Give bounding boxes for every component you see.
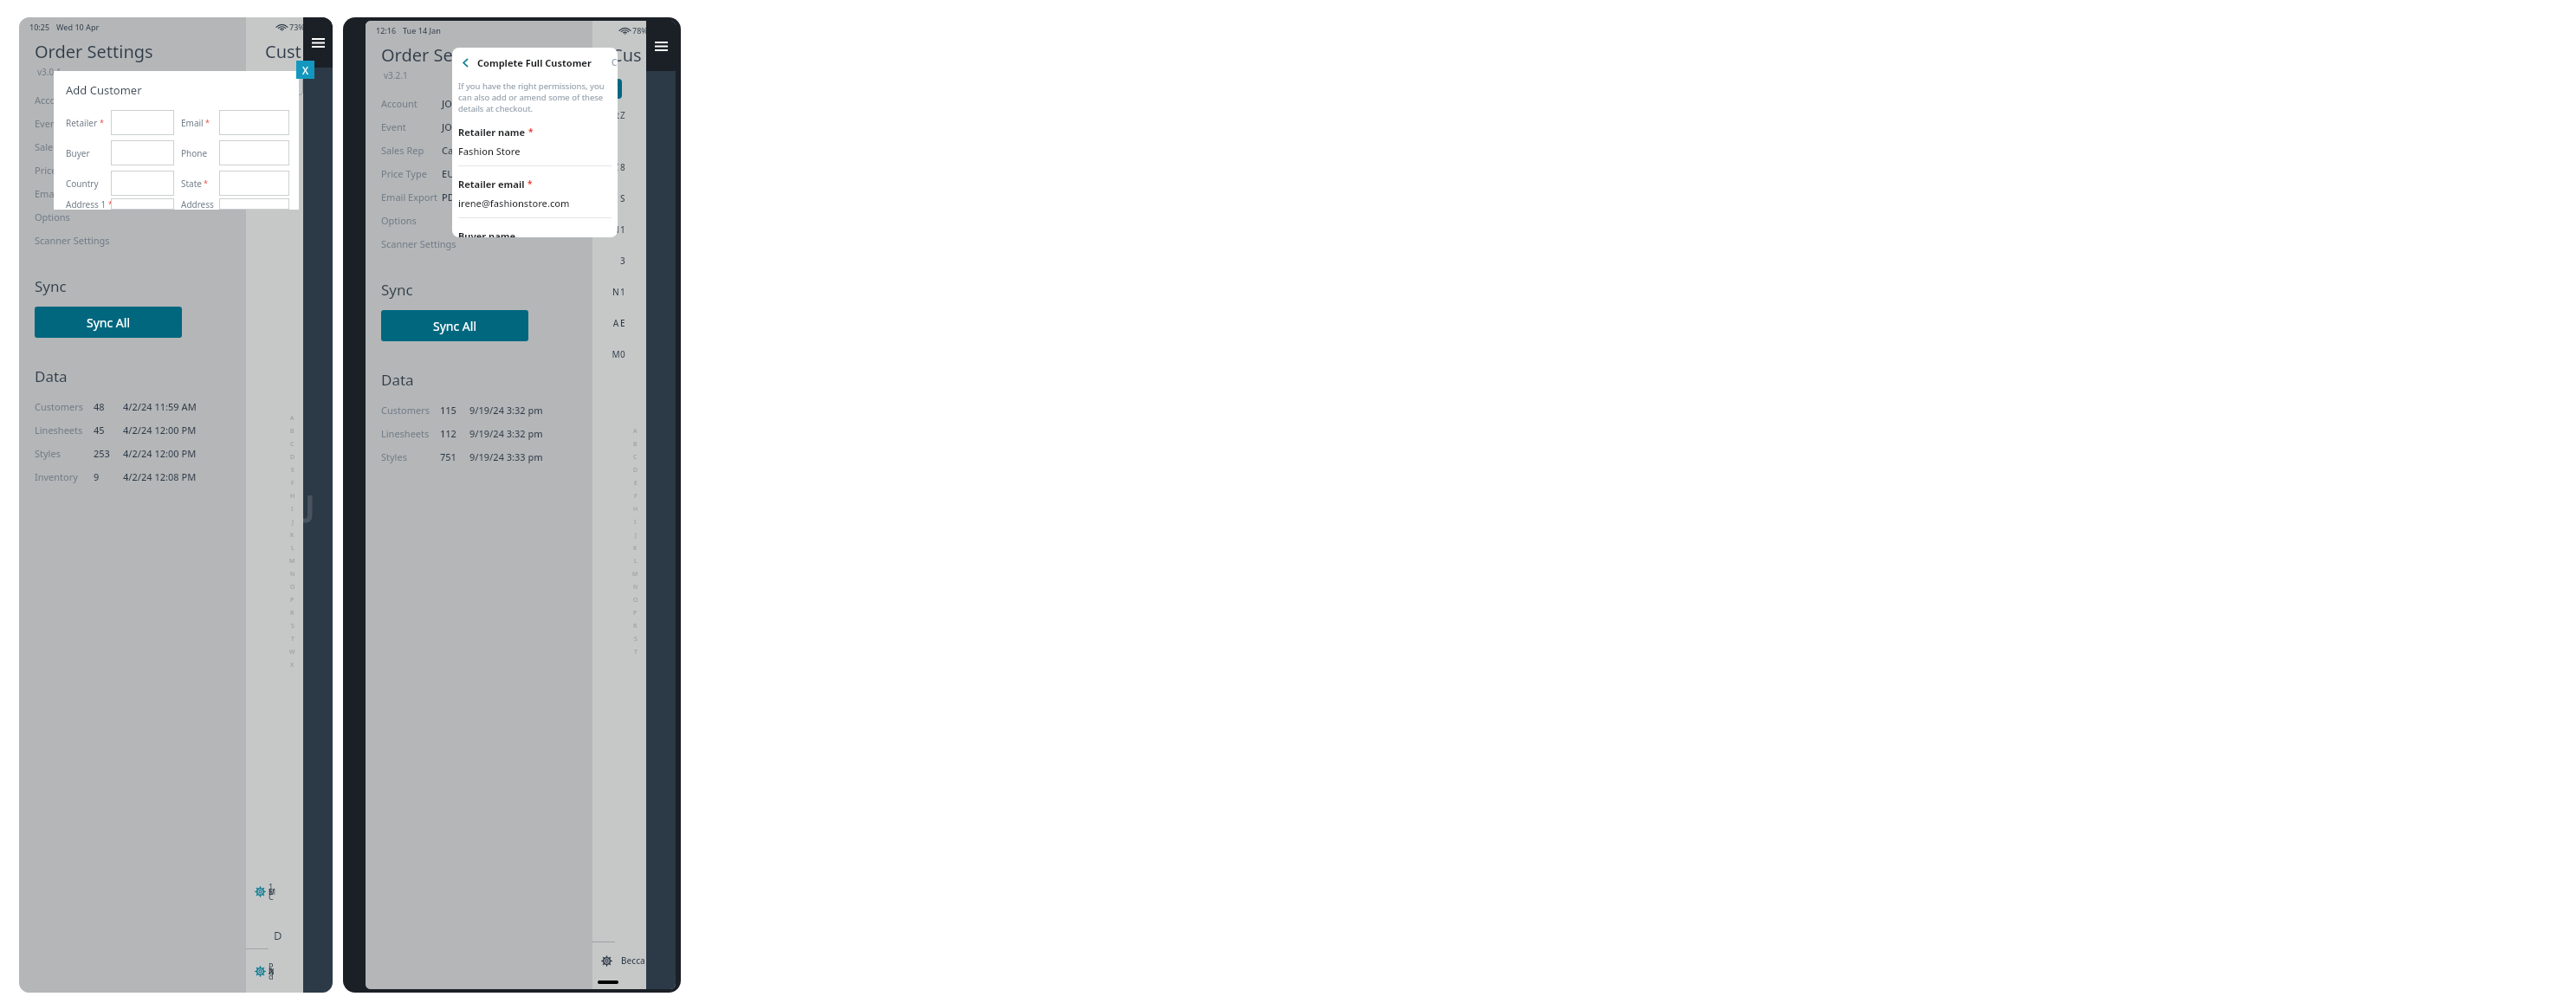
button[interactable]: Close [296, 61, 314, 79]
button[interactable] [111, 140, 174, 165]
staticText: Email [181, 117, 204, 129]
staticText: * [204, 178, 208, 188]
button[interactable]: Buyer name [458, 230, 612, 237]
staticText: H [633, 505, 638, 518]
staticText: J [635, 531, 637, 544]
staticText: NY [612, 286, 620, 298]
button[interactable]: Account [381, 92, 584, 115]
staticText: D [633, 466, 638, 479]
button[interactable]: 1001 [255, 875, 269, 908]
button[interactable]: Sales Rep [381, 139, 584, 162]
staticText: Retailer name [458, 126, 526, 139]
staticText: Retailer email [458, 178, 525, 191]
staticText [95, 164, 237, 177]
staticText: JOOR Demo Brand [95, 94, 220, 107]
staticText: T [291, 635, 294, 648]
staticText: * [205, 117, 210, 127]
staticText: F [291, 479, 294, 492]
staticText: D [274, 928, 282, 943]
staticText: R [290, 609, 294, 622]
staticText: * [108, 198, 111, 209]
staticText: Sync [35, 276, 67, 296]
staticText: 115 [440, 404, 469, 417]
staticText: PDF [442, 191, 584, 204]
staticText: JOOR iPad [95, 117, 220, 130]
button[interactable]: PT test 2 [255, 954, 269, 987]
button[interactable]: Scanner Settings [35, 229, 237, 252]
staticText: v3.0.1 [37, 66, 61, 78]
button[interactable]: search name, country, city [270, 76, 303, 95]
button[interactable]: Email Export [381, 185, 584, 209]
button[interactable]: Scanner Settings [381, 232, 584, 256]
staticText: JOOR iPad [442, 120, 566, 133]
button[interactable]: Price Type [35, 159, 237, 182]
staticText: Options [35, 210, 70, 223]
button[interactable]: Back [458, 55, 472, 69]
staticText: B [633, 440, 638, 453]
button[interactable]: Sync All [35, 307, 182, 338]
staticText: Email Export [381, 191, 442, 204]
staticText: Complete Full Customer Details [477, 56, 612, 69]
button[interactable]: Becca Apparel [601, 942, 646, 979]
button[interactable] [219, 198, 289, 210]
staticText: K [633, 544, 638, 557]
staticText: D [290, 453, 295, 466]
button[interactable] [219, 110, 289, 135]
staticText: 48 [94, 400, 123, 413]
staticText: Order Settings [381, 43, 500, 67]
button[interactable]: Add Customer [612, 79, 622, 99]
staticText: O [633, 596, 638, 609]
staticText: Customers [35, 400, 94, 413]
staticText: Scanner Settings [35, 234, 110, 247]
button[interactable] [111, 110, 174, 135]
button[interactable]: Account [35, 88, 237, 112]
button[interactable]: Event [35, 112, 237, 135]
staticText: JOOR DEMO BRAND [442, 97, 566, 110]
button[interactable]: Options [381, 209, 584, 232]
staticText: Order Settings [35, 40, 153, 63]
staticText: S [634, 635, 638, 648]
button[interactable]: Email Export [35, 182, 237, 205]
staticText: EUR (EUR) [442, 167, 584, 180]
button[interactable]: Retailer email [458, 178, 612, 230]
staticText: NY [612, 223, 620, 236]
button[interactable]: Menu [308, 33, 327, 52]
button[interactable] [111, 198, 174, 210]
staticText: irene@fashionstore.com [458, 197, 570, 210]
staticText: Sync All [87, 314, 131, 331]
button[interactable]: Price Type [381, 162, 584, 185]
staticText: F [634, 492, 638, 505]
staticText: Price Type [35, 164, 95, 177]
staticText: Event [35, 117, 95, 130]
button[interactable]: Retailer name [458, 126, 612, 178]
button[interactable] [219, 171, 289, 196]
staticText: N [290, 570, 295, 583]
staticText: B [290, 427, 294, 440]
button[interactable]: Menu [651, 36, 670, 55]
staticText: State [181, 178, 202, 190]
staticText: Phone [181, 147, 208, 159]
button[interactable] [111, 171, 174, 196]
staticText: N [633, 583, 638, 596]
staticText: * [100, 117, 104, 127]
staticText: 4/2/24 12:08 PM [123, 470, 197, 483]
staticText [95, 187, 237, 200]
staticText: P [633, 609, 638, 622]
staticText: Data [381, 370, 414, 390]
staticText: v3.2.1 [384, 69, 408, 81]
button[interactable]: Event [381, 115, 584, 139]
button[interactable] [219, 140, 289, 165]
staticText: CO [612, 161, 620, 173]
button[interactable]: Options [35, 205, 237, 229]
staticText: Linesheets [35, 424, 94, 437]
staticText: Styles [381, 450, 440, 463]
staticText: C [633, 453, 638, 466]
staticText: S [291, 622, 294, 635]
staticText: Tue 14 Jan [403, 25, 441, 36]
button[interactable]: Sales Rep [35, 135, 237, 159]
staticText: 4/2/24 12:00 PM [123, 447, 197, 460]
button[interactable]: Sync All [381, 310, 528, 341]
staticText: * [528, 126, 534, 138]
staticText: State [612, 109, 620, 121]
staticText: 10:25 [29, 22, 50, 32]
